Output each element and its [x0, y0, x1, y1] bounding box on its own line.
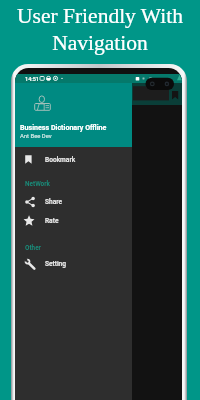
staticText: Rate	[45, 217, 59, 225]
other: Profile	[34, 95, 51, 111]
staticText: Setting	[45, 260, 67, 268]
staticText: NetWork	[25, 180, 50, 188]
button[interactable]: Share	[15, 192, 132, 211]
button[interactable]: Close navigation drawer	[15, 105, 182, 400]
button[interactable]: Bookmarks	[169, 91, 181, 103]
staticText: Ant Bee Dev	[20, 133, 52, 140]
staticText: User Friendly With Navigation	[0, 4, 200, 54]
button[interactable]: Setting	[15, 254, 132, 273]
staticText: 14:51	[25, 76, 39, 82]
button[interactable]: Bookmark	[15, 150, 132, 169]
staticText: Business Dictionary Offline	[20, 123, 107, 131]
button[interactable]: Rate	[15, 211, 132, 230]
staticText: Share	[45, 198, 63, 206]
staticText: Other	[25, 244, 41, 252]
staticText: Bookmark	[45, 156, 76, 164]
button[interactable]: Profile	[15, 83, 132, 147]
